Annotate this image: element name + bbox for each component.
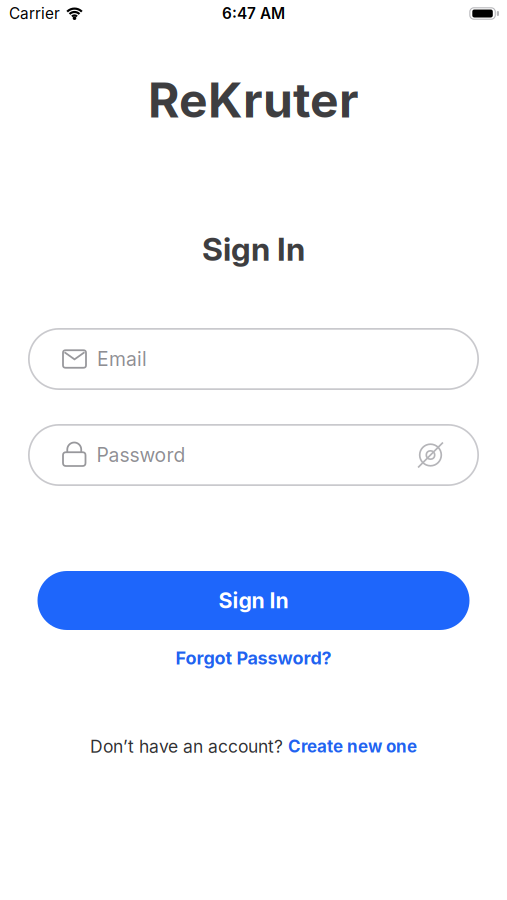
button[interactable]: Create new one (288, 736, 417, 757)
staticText: ReKruter (148, 71, 359, 129)
staticText: Don’t have an account? (90, 736, 283, 757)
staticText: Sign In (218, 588, 288, 613)
staticText: Email (97, 347, 147, 371)
button[interactable]: Email (0, 328, 507, 390)
button[interactable]: Password (0, 424, 507, 486)
staticText: Sign In (202, 230, 305, 268)
button[interactable]: Show password (417, 442, 444, 468)
staticText: 6:47 AM (222, 4, 285, 23)
staticText: Create new one (288, 736, 417, 757)
staticText: Password (96, 443, 185, 467)
button[interactable]: Forgot Password? (175, 642, 331, 674)
staticText: Forgot Password? (175, 647, 331, 669)
staticText: Carrier (9, 4, 60, 23)
button[interactable]: Sign In (0, 571, 507, 630)
